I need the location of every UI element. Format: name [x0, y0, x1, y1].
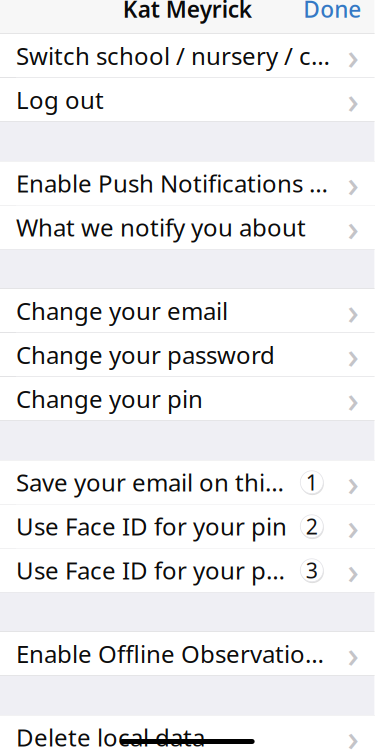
- staticText: Change your email: [16, 295, 228, 327]
- button[interactable]: Enable Offline Observations On This Dev…: [0, 632, 374, 675]
- staticText: ›: [347, 287, 359, 335]
- staticText: ›: [347, 331, 359, 379]
- button[interactable]: Use Face ID for your pin: [0, 504, 374, 548]
- staticText: Save your email on this device: [16, 466, 291, 498]
- button[interactable]: Log out: [0, 78, 374, 121]
- staticText: Use Face ID for your pin: [16, 510, 287, 542]
- staticText: ›: [347, 630, 359, 678]
- button[interactable]: Save your email on this device: [0, 460, 374, 504]
- button[interactable]: Change your pin: [0, 377, 374, 420]
- button[interactable]: What we notify you about: [0, 205, 374, 249]
- staticText: ›: [347, 76, 359, 124]
- staticText: Kat Meyrick: [123, 0, 252, 24]
- button[interactable]: Change your password: [0, 333, 374, 376]
- staticText: ›: [347, 32, 359, 80]
- staticText: Enable Push Notifications On This Device: [16, 167, 338, 199]
- button[interactable]: Switch school / nursery / child minder: [0, 34, 374, 77]
- staticText: 2: [306, 512, 318, 540]
- staticText: Log out: [16, 84, 104, 116]
- staticText: Use Face ID for your password: [16, 554, 291, 586]
- staticText: ›: [347, 546, 359, 594]
- staticText: Switch school / nursery / child minder: [16, 40, 338, 72]
- button[interactable]: Change your email: [0, 289, 374, 332]
- staticText: ›: [347, 203, 359, 251]
- button[interactable]: Use Face ID for your password: [0, 548, 374, 592]
- staticText: What we notify you about: [16, 211, 306, 243]
- staticText: 3: [306, 556, 318, 584]
- staticText: ›: [347, 159, 359, 207]
- staticText: ›: [347, 375, 359, 423]
- staticText: Done: [303, 0, 361, 24]
- button[interactable]: Enable Push Notifications On This Device: [0, 161, 374, 205]
- button[interactable]: Delete local data: [0, 715, 374, 752]
- staticText: Change your password: [16, 339, 275, 371]
- button[interactable]: Done: [290, 0, 374, 33]
- staticText: Enable Offline Observations On This Dev…: [16, 638, 338, 670]
- staticText: 1: [306, 468, 318, 496]
- staticText: Change your pin: [16, 383, 203, 415]
- staticText: ›: [347, 502, 359, 550]
- staticText: ›: [347, 713, 359, 752]
- staticText: Delete local data: [16, 721, 205, 752]
- staticText: ›: [347, 458, 359, 506]
